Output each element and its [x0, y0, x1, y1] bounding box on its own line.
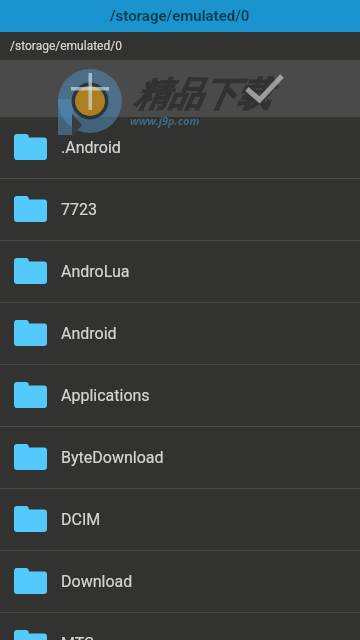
staticText: MTS [61, 634, 94, 640]
other: Folder [14, 258, 47, 284]
button[interactable]: Folder [0, 426, 360, 488]
other: Folder [14, 506, 47, 532]
staticText: /storage/emulated/0 [10, 39, 122, 53]
button[interactable]: Folder [0, 116, 360, 178]
button[interactable]: /storage/emulated/0 [0, 0, 360, 32]
other: Folder [14, 568, 47, 594]
button[interactable]: /storage/emulated/0 [0, 32, 360, 60]
staticText: www.j9p.com [130, 113, 200, 128]
staticText: ByteDownload [61, 448, 164, 467]
button[interactable]: Folder [0, 364, 360, 426]
staticText: 精品下载 [134, 73, 270, 116]
other: Folder [14, 196, 47, 222]
button[interactable]: Folder [0, 612, 360, 640]
button[interactable]: Folder [0, 240, 360, 302]
other: Folder [14, 320, 47, 346]
button[interactable]: Folder [0, 488, 360, 550]
staticText: Download [61, 572, 133, 591]
other: Folder [14, 444, 47, 470]
other: Folder [14, 630, 47, 640]
staticText: Applications [61, 386, 150, 405]
button[interactable]: Folder [0, 178, 360, 240]
staticText: 7723 [61, 200, 97, 219]
staticText: DCIM [61, 510, 101, 529]
staticText: Android [61, 324, 117, 343]
other: Folder [14, 382, 47, 408]
button[interactable]: Folder [0, 550, 360, 612]
other: Folder [14, 134, 47, 160]
staticText: /storage/emulated/0 [110, 7, 250, 25]
button[interactable]: Folder [0, 302, 360, 364]
staticText: .Android [61, 138, 121, 157]
staticText: AndroLua [61, 262, 130, 281]
